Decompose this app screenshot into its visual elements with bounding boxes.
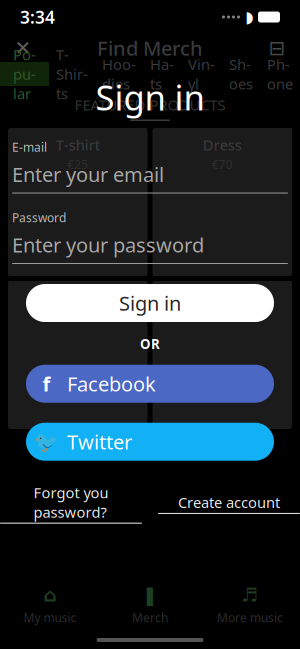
staticText: Enter your email	[12, 161, 164, 188]
staticText: OR	[140, 335, 160, 353]
staticText: Phone	[267, 54, 293, 93]
staticText: FEATURED PRODUCTS	[74, 95, 225, 114]
staticText: ✕	[14, 37, 31, 59]
staticText: Enter your password	[12, 231, 204, 258]
staticText: Shoes	[229, 54, 253, 93]
button[interactable]: T-Shirts	[49, 62, 95, 86]
button[interactable]: Hats	[143, 62, 181, 86]
button[interactable]: Hoodies	[95, 62, 143, 86]
button[interactable]: Sign in	[26, 284, 274, 322]
button[interactable]: ♬	[200, 583, 300, 627]
staticText: Find Merch	[97, 35, 203, 61]
button[interactable]: Phone Case	[152, 281, 292, 429]
staticText: ◗	[245, 8, 253, 26]
button[interactable]: 🐦	[26, 423, 274, 461]
button[interactable]: Forgot you password?	[0, 483, 142, 524]
staticText: More music	[217, 610, 283, 625]
staticText: Forgot you password?	[33, 483, 108, 522]
button[interactable]: Cart	[260, 33, 294, 63]
staticText: Facebook	[67, 370, 156, 397]
staticText: €25	[67, 156, 88, 172]
staticText: T-shirt	[56, 135, 100, 154]
button[interactable]: Wall Clock	[8, 281, 147, 429]
button[interactable]: T-shirt	[8, 128, 147, 276]
staticText: Merch	[132, 610, 168, 625]
staticText: Hoodies	[102, 54, 136, 93]
staticText: ♬	[241, 584, 258, 606]
button[interactable]: f	[26, 365, 274, 403]
staticText: €30	[212, 309, 233, 325]
staticText: My music	[23, 610, 76, 625]
staticText: Sign in	[95, 74, 204, 120]
button[interactable]: Popular	[0, 62, 49, 86]
staticText: ⌂	[43, 584, 56, 606]
button[interactable]: Phone	[260, 62, 300, 86]
button[interactable]: Create account	[158, 492, 300, 514]
staticText: €70	[212, 156, 233, 172]
staticText: ❚	[142, 584, 158, 606]
staticText: ⊟	[268, 37, 285, 59]
button[interactable]: ⌂	[0, 583, 100, 627]
staticText: Popular	[13, 45, 36, 103]
staticText: Dress	[203, 135, 242, 154]
button[interactable]: Close	[6, 33, 40, 63]
staticText: Password	[12, 209, 66, 225]
staticText: Vinyl	[188, 54, 215, 93]
staticText: Twitter	[67, 428, 132, 455]
staticText: €50	[67, 309, 88, 325]
staticText: f	[42, 370, 50, 397]
staticText: 🐦	[34, 430, 59, 453]
button[interactable]: ❚	[100, 583, 200, 627]
staticText: Create account	[178, 492, 280, 512]
staticText: E-mail	[12, 139, 47, 155]
staticText: Sign in	[119, 290, 181, 316]
staticText: T-Shirts	[56, 45, 88, 103]
button[interactable]: Vinyl	[181, 62, 222, 86]
button[interactable]: Shoes	[222, 62, 260, 86]
staticText: 3:34	[20, 5, 55, 28]
button[interactable]: Dress	[152, 128, 292, 276]
staticText: Hats	[150, 54, 174, 93]
